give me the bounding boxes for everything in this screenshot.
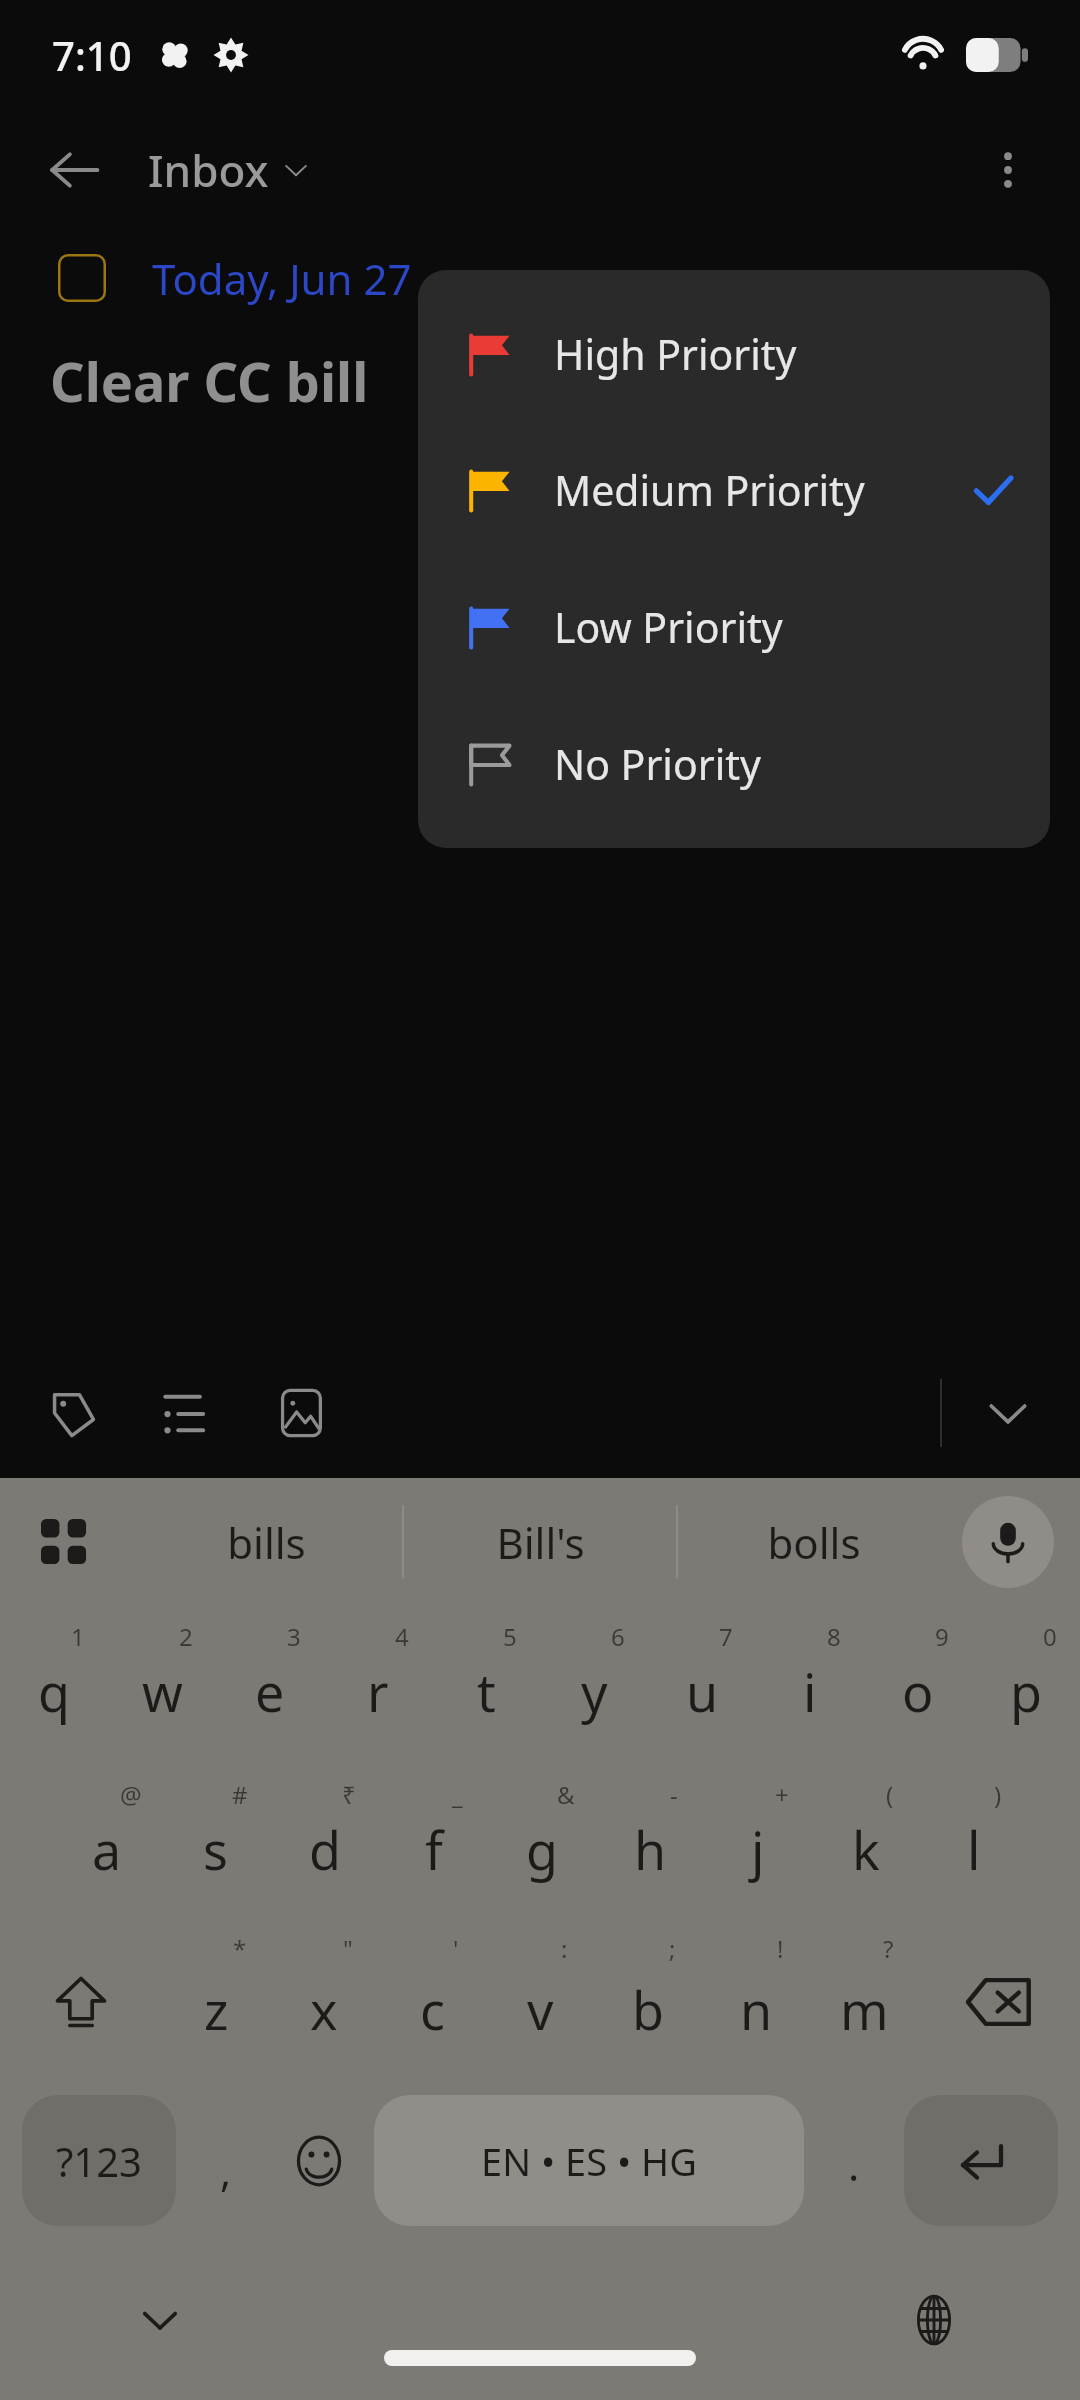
staticText: Low Priority [554,599,1016,655]
button[interactable]: . [810,2095,898,2226]
staticText: y [581,1656,608,1727]
staticText: 0 [1043,1620,1057,1653]
button[interactable]: Bill's [404,1478,676,1606]
staticText: ; [669,1932,676,1965]
staticText: j [751,1814,765,1885]
button[interactable]: & [488,1764,596,1922]
staticText: b [632,1974,664,2045]
staticText: High Priority [554,326,1016,382]
button[interactable]: ₹ [270,1764,379,1922]
staticText: 8 [827,1620,841,1653]
button[interactable]: - [596,1764,704,1922]
button[interactable]: ? [810,1922,918,2081]
button[interactable]: Inbox [140,134,317,206]
button[interactable]: * [162,1922,270,2081]
button[interactable]: 7 [648,1606,756,1764]
staticText: l [967,1814,981,1885]
staticText: * [233,1932,247,1965]
button[interactable]: No Priority [418,695,1050,832]
button[interactable]: High Priority [418,286,1050,422]
button[interactable]: 4 [324,1606,432,1764]
staticText: 1 [71,1620,85,1653]
button[interactable]: " [270,1922,378,2081]
button[interactable]: 8 [756,1606,864,1764]
button[interactable]: Checklist [142,1367,234,1459]
button[interactable]: Emoji [270,2095,368,2226]
button[interactable]: EN • ES • HG [374,2095,804,2226]
staticText: bolls [767,1514,861,1571]
button[interactable]: bolls [678,1478,950,1606]
button[interactable]: Add image [256,1367,348,1459]
staticText: Bill's [496,1514,585,1571]
button[interactable]: ' [378,1922,486,2081]
staticText: 7 [719,1620,733,1653]
staticText: : [561,1932,568,1965]
button[interactable]: # [161,1764,270,1922]
staticText: z [204,1974,229,2045]
button[interactable]: Change language [892,2278,976,2362]
button[interactable]: 2 [108,1606,216,1764]
button[interactable]: 3 [216,1606,324,1764]
button[interactable]: Voice input [962,1496,1054,1588]
button[interactable]: ! [702,1922,810,2081]
staticText: a [92,1814,122,1885]
staticText: u [686,1656,719,1727]
button[interactable]: Backspace [918,1922,1080,2081]
staticText: ' [453,1932,459,1965]
button[interactable]: Medium Priority [418,422,1050,558]
button[interactable]: 5 [432,1606,540,1764]
staticText: o [902,1656,934,1727]
staticText: Medium Priority [554,462,970,518]
button[interactable]: 1 [0,1606,108,1764]
staticText: , [220,2142,232,2199]
button[interactable]: ( [812,1764,920,1922]
staticText: i [803,1656,817,1727]
staticText: x [310,1974,338,2045]
staticText: ( [886,1778,894,1811]
button[interactable]: + [704,1764,812,1922]
button[interactable]: Collapse [962,1367,1054,1459]
button[interactable]: More options [962,124,1054,216]
button[interactable]: 9 [864,1606,972,1764]
button[interactable]: Add label [28,1367,120,1459]
staticText: h [634,1814,667,1885]
staticText: @ [120,1778,142,1811]
button[interactable]: 0 [972,1606,1080,1764]
staticText: c [420,1974,445,2045]
staticText: 7:10 [52,28,132,82]
button[interactable]: Toggle reminder [58,254,106,302]
staticText: Today, Jun 27 [152,250,412,307]
staticText: ₹ [342,1778,356,1811]
button[interactable]: Open keyboard menu [22,1500,106,1584]
button[interactable]: ?123 [22,2095,176,2226]
staticText: 2 [179,1620,193,1653]
button[interactable]: _ [379,1764,488,1922]
staticText: + [775,1778,789,1811]
button[interactable]: Enter [904,2095,1058,2226]
staticText: # [232,1778,248,1811]
button[interactable]: Back [28,124,120,216]
button[interactable]: Low Priority [418,558,1050,695]
button[interactable]: ) [920,1764,1028,1922]
staticText: t [477,1656,496,1727]
staticText: - [670,1778,678,1811]
staticText: p [1010,1656,1042,1727]
button[interactable]: Hide keyboard [118,2278,202,2362]
staticText: v [527,1974,554,2045]
staticText: & [557,1778,575,1811]
button[interactable]: Shift [0,1922,162,2081]
staticText: 4 [395,1620,409,1653]
staticText: EN • ES • HG [481,2135,697,2187]
button[interactable]: bills [130,1478,402,1606]
button[interactable]: : [486,1922,594,2081]
button[interactable]: 6 [540,1606,648,1764]
staticText: ) [994,1778,1002,1811]
button[interactable]: @ [52,1764,161,1922]
staticText: 3 [287,1620,301,1653]
staticText: _ [452,1778,463,1811]
staticText: e [255,1656,285,1727]
staticText: r [367,1656,389,1727]
button[interactable]: , [182,2095,270,2226]
button[interactable]: ; [594,1922,702,2081]
staticText: . [848,2136,860,2193]
